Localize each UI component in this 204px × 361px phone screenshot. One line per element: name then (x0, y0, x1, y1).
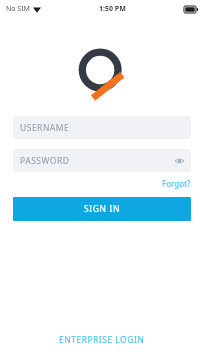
button[interactable]: SIGN IN (13, 197, 191, 221)
button[interactable]: USERNAME (13, 116, 191, 139)
button[interactable]: PASSWORD (13, 149, 191, 172)
staticText: Forgot? (162, 178, 191, 189)
button[interactable]: ENTERPRISE LOGIN (0, 319, 204, 361)
staticText: PASSWORD (20, 155, 70, 167)
staticText: No SIM (6, 4, 30, 14)
button[interactable]: Show password (170, 151, 189, 170)
staticText: ENTERPRISE LOGIN (59, 334, 145, 346)
staticText: USERNAME (20, 122, 70, 134)
staticText: 1:50 PM (99, 4, 126, 14)
staticText: SIGN IN (84, 203, 120, 215)
button[interactable]: Forgot? (162, 178, 191, 189)
